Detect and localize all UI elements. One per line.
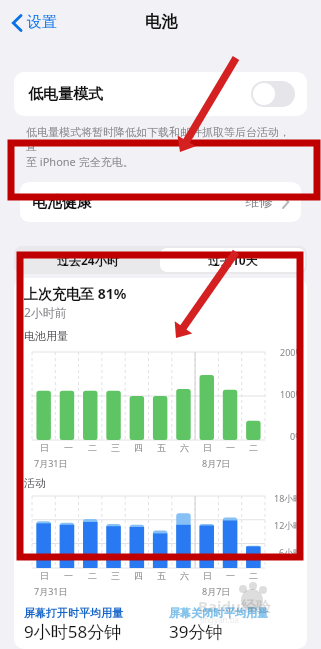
- staticText: 活动: [24, 476, 46, 490]
- staticText: 8月7日: [202, 585, 231, 597]
- staticText: 一: [226, 570, 235, 581]
- staticText: 电池用量: [24, 329, 68, 343]
- staticText: 过去24小时: [57, 252, 119, 268]
- staticText: Baidu经验: [198, 596, 271, 616]
- button[interactable]: 设置: [8, 9, 61, 36]
- staticText: 一: [64, 570, 73, 581]
- staticText: 2小时前: [24, 304, 67, 320]
- staticText: 12小时: [274, 519, 303, 531]
- staticText: 四: [134, 442, 143, 453]
- staticText: 日: [40, 442, 49, 453]
- staticText: 设置: [27, 13, 57, 32]
- button[interactable]: 低电量模式: [14, 72, 307, 116]
- staticText: 六: [180, 570, 189, 581]
- staticText: 日: [203, 570, 212, 581]
- staticText: 二: [88, 570, 97, 581]
- staticText: 8月7日: [202, 457, 231, 469]
- staticText: 过去10天: [208, 252, 258, 268]
- button[interactable]: 电池健康: [20, 182, 301, 222]
- staticText: 低电量模式: [28, 85, 103, 104]
- staticText: 屏幕打开时平均用量: [24, 606, 123, 620]
- staticText: 6小时: [279, 546, 303, 558]
- staticText: 39分钟: [169, 620, 223, 643]
- staticText: 上次充电至 81%: [24, 284, 127, 303]
- button[interactable]: 过去10天: [160, 248, 305, 272]
- staticText: 三: [111, 442, 120, 453]
- staticText: 六: [180, 442, 189, 453]
- staticText: 电池: [145, 12, 177, 32]
- staticText: 屏幕关闭时平均用量: [169, 606, 268, 620]
- staticText: 7月31日: [34, 585, 68, 597]
- staticText: 维修: [245, 193, 273, 211]
- staticText: 五: [157, 442, 166, 453]
- staticText: 二: [249, 570, 258, 581]
- staticText: 0%: [290, 430, 303, 442]
- staticText: 低电量模式将暂时降低如下载和邮件抓取等后台活动，直 至 iPhone 完全充电。: [26, 125, 295, 169]
- staticText: 二: [88, 442, 97, 453]
- staticText: 日: [40, 570, 49, 581]
- staticText: 200%: [280, 346, 303, 358]
- staticText: jingyan.ba: [200, 614, 240, 625]
- staticText: 二: [249, 442, 258, 453]
- staticText: 一: [226, 442, 235, 453]
- staticText: 一: [64, 442, 73, 453]
- staticText: 电池健康: [32, 193, 92, 212]
- staticText: 100%: [280, 388, 303, 400]
- staticText: 三: [111, 570, 120, 581]
- staticText: 7月31日: [34, 457, 68, 469]
- staticText: 日: [203, 442, 212, 453]
- staticText: 四: [134, 570, 143, 581]
- staticText: 18小时: [274, 492, 303, 504]
- button[interactable]: 过去24小时: [16, 248, 160, 272]
- button[interactable]: Low Power Mode toggle: [251, 81, 295, 107]
- staticText: 五: [157, 570, 166, 581]
- staticText: 9小时58分钟: [24, 620, 122, 643]
